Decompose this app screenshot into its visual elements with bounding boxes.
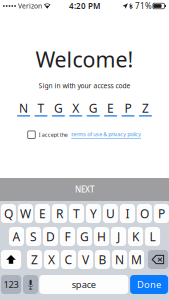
staticText: V — [82, 251, 89, 267]
button[interactable]: J — [111, 227, 126, 246]
button[interactable]: Z — [27, 250, 42, 269]
staticText: O — [140, 205, 149, 221]
button[interactable]: X — [69, 100, 82, 117]
staticText: Done — [137, 278, 161, 291]
button[interactable]: R — [52, 204, 67, 223]
button[interactable]: E — [104, 100, 117, 117]
staticText: Z — [31, 251, 38, 267]
button[interactable]: V — [78, 250, 93, 269]
staticText: E — [39, 205, 46, 221]
button[interactable]: T — [69, 204, 84, 223]
staticText: X — [48, 251, 55, 267]
button[interactable]: N — [17, 100, 30, 117]
staticText: NEXT — [75, 184, 94, 195]
button[interactable]: F — [60, 227, 75, 246]
button[interactable]: A — [9, 227, 24, 246]
staticText: W — [20, 205, 31, 221]
button[interactable]: W — [18, 204, 33, 223]
staticText: J — [117, 228, 120, 244]
staticText: P — [124, 100, 131, 116]
button[interactable]: O — [137, 204, 152, 223]
staticText: Q — [4, 205, 13, 221]
button[interactable]: H — [94, 227, 109, 246]
button[interactable]: D — [43, 227, 58, 246]
button[interactable]: G — [52, 100, 65, 117]
button[interactable]: B — [95, 250, 110, 269]
staticText: T — [73, 205, 80, 221]
button[interactable]: 123 — [1, 275, 21, 294]
button[interactable] — [1, 250, 21, 269]
button[interactable]: N — [112, 250, 127, 269]
button[interactable]: S — [26, 227, 41, 246]
staticText: M — [131, 251, 142, 267]
staticText: 4:20 PM — [69, 1, 100, 11]
button[interactable]: G — [87, 100, 100, 117]
button[interactable]: Accept terms — [28, 131, 35, 138]
staticText: G — [54, 100, 63, 116]
button[interactable]: C — [61, 250, 76, 269]
button[interactable]: space — [39, 275, 128, 294]
staticText: I accept the — [39, 131, 68, 138]
staticText: L — [149, 228, 155, 244]
button[interactable]: G — [77, 227, 92, 246]
button[interactable]: I — [120, 204, 135, 223]
staticText: N — [19, 100, 28, 116]
staticText: A — [12, 228, 20, 244]
staticText: U — [106, 205, 115, 221]
button[interactable]: E — [35, 204, 50, 223]
staticText: Verizon — [16, 2, 44, 10]
staticText: D — [46, 228, 55, 244]
button[interactable]: NEXT — [0, 178, 169, 201]
button[interactable]: M — [129, 250, 144, 269]
staticText: space — [72, 278, 96, 291]
button[interactable]: P — [154, 204, 169, 223]
button[interactable]: Done — [130, 275, 168, 294]
staticText: 123 — [3, 278, 18, 291]
staticText: C — [64, 251, 72, 267]
staticText: K — [132, 228, 139, 244]
staticText: S — [30, 228, 37, 244]
staticText: Welcome! — [35, 45, 133, 73]
staticText: 71% — [133, 1, 152, 11]
staticText: P — [158, 205, 165, 221]
button[interactable]: P — [121, 100, 135, 117]
button[interactable] — [148, 250, 168, 269]
button[interactable]: L — [145, 227, 160, 246]
staticText: I — [125, 205, 129, 221]
button[interactable]: Z — [139, 100, 152, 117]
staticText: G — [89, 100, 98, 116]
button[interactable]: Q — [1, 204, 16, 223]
button[interactable]: U — [103, 204, 118, 223]
staticText: R — [56, 205, 63, 221]
staticText: terms of use & privacy policy — [71, 131, 141, 138]
staticText: F — [64, 228, 70, 244]
staticText: B — [98, 251, 106, 267]
staticText: E — [107, 100, 114, 116]
button[interactable]: K — [128, 227, 143, 246]
button[interactable]: T — [34, 100, 48, 117]
staticText: Y — [90, 205, 97, 221]
staticText: Sign in with your access code — [38, 81, 130, 90]
button[interactable]: X — [44, 250, 59, 269]
staticText: T — [37, 100, 44, 116]
staticText: G — [80, 228, 89, 244]
staticText: X — [72, 100, 79, 116]
staticText: Z — [142, 100, 149, 116]
button[interactable]: terms of use & privacy policy — [71, 131, 141, 139]
staticText: H — [97, 228, 106, 244]
button[interactable] — [23, 275, 38, 294]
staticText: N — [115, 251, 124, 267]
staticText — [152, 3, 153, 9]
button[interactable]: Y — [86, 204, 101, 223]
